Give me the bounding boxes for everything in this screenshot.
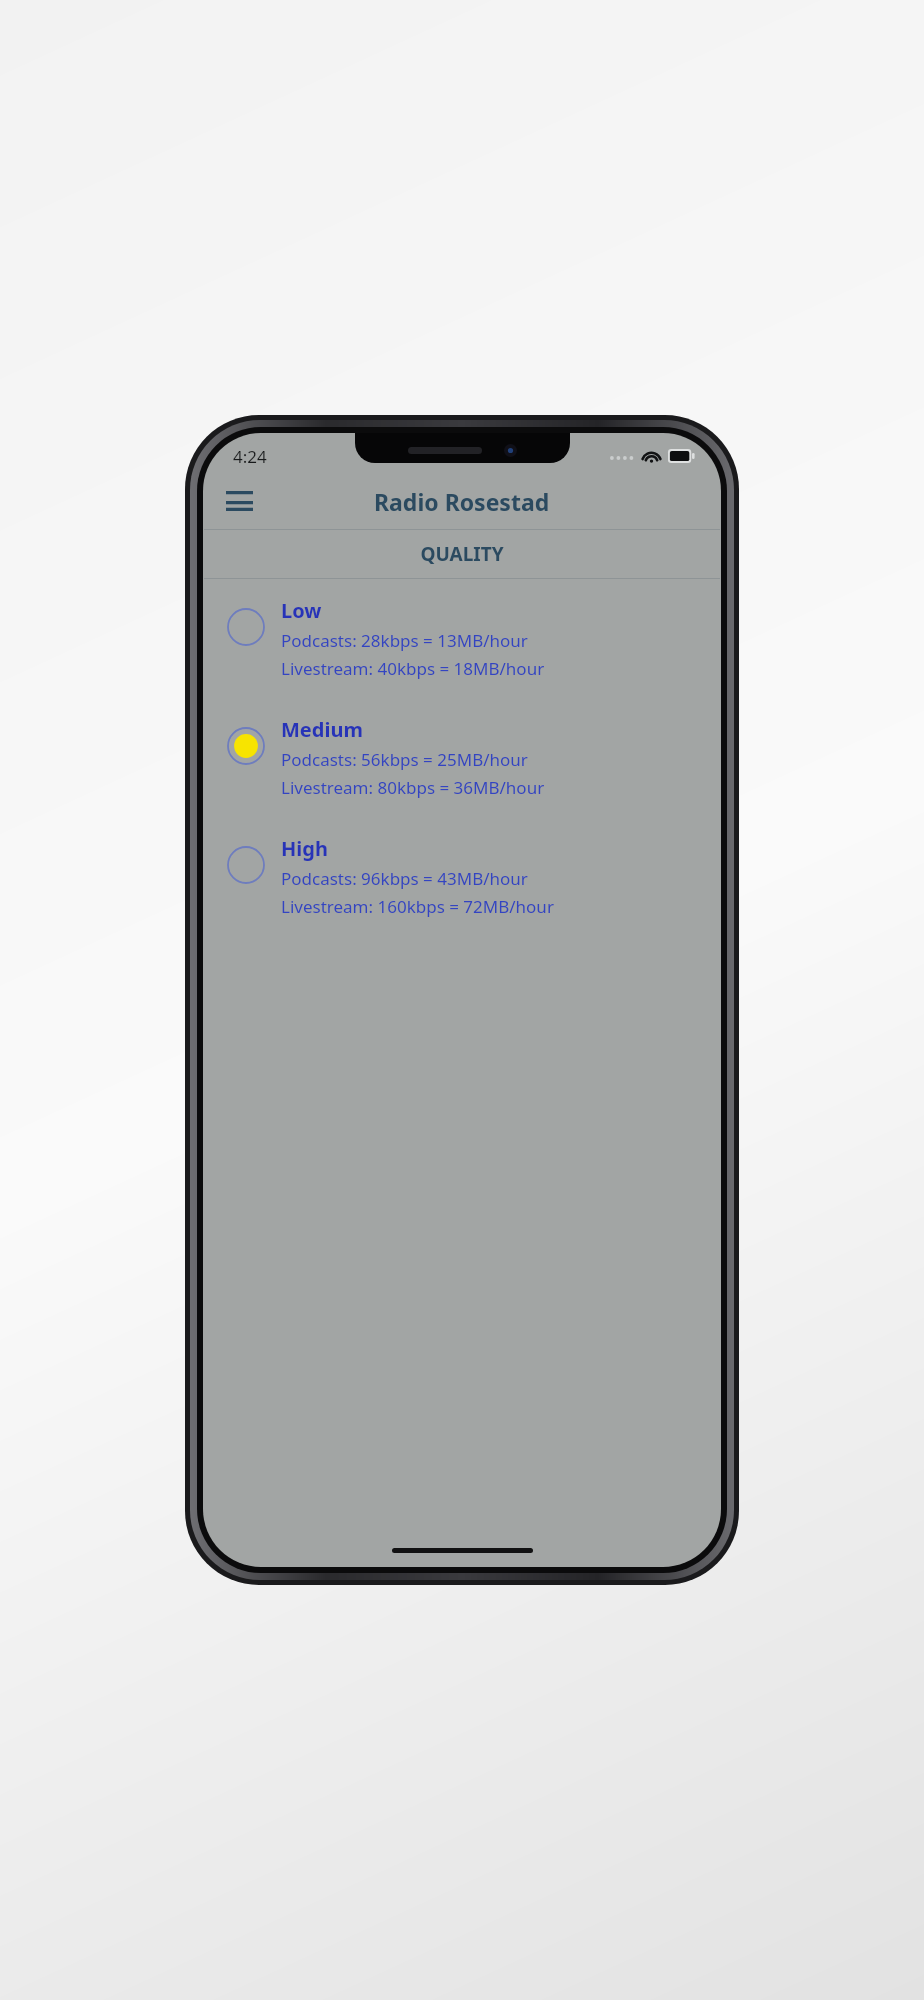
- staticText: Podcasts: 96kbps = 43MB/hour: [281, 867, 528, 890]
- staticText: Radio Rosestad: [374, 486, 550, 517]
- staticText: Livestream: 40kbps = 18MB/hour: [281, 657, 545, 680]
- staticText: Podcasts: 56kbps = 25MB/hour: [281, 748, 528, 771]
- staticText: QUALITY: [420, 541, 504, 567]
- staticText: 4:24: [233, 445, 267, 468]
- button[interactable]: Low: [203, 593, 721, 684]
- button[interactable]: Open navigation menu: [215, 477, 263, 525]
- staticText: High: [281, 835, 328, 862]
- staticText: Podcasts: 28kbps = 13MB/hour: [281, 629, 528, 652]
- button[interactable]: Medium: [203, 712, 721, 803]
- staticText: Livestream: 80kbps = 36MB/hour: [281, 776, 545, 799]
- staticText: Low: [281, 597, 322, 624]
- staticText: Medium: [281, 716, 363, 743]
- staticText: Livestream: 160kbps = 72MB/hour: [281, 895, 554, 918]
- button[interactable]: High: [203, 831, 721, 922]
